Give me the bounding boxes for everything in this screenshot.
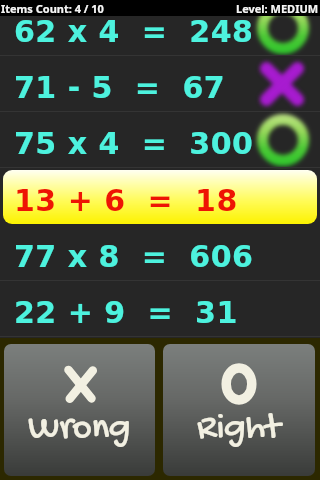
button[interactable]: Right [163,344,315,476]
staticText: 75 x 4 = 300 [14,126,254,161]
staticText: 22 + 9 = 31 [14,295,238,330]
staticText: Wrong [28,407,131,451]
button[interactable]: Wrong [4,344,155,476]
button[interactable]: 75 x 4 = 300 [0,112,320,168]
button[interactable]: 22 + 9 = 31 [0,281,320,337]
staticText: Level: MEDIUM [236,1,319,16]
button[interactable]: 77 x 8 = 606 [0,225,320,281]
staticText: 62 x 4 = 248 [14,16,254,49]
button[interactable]: 13 + 6 = 18 [3,170,317,224]
button[interactable]: 62 x 4 = 248 [0,16,320,56]
staticText: 77 x 8 = 606 [14,239,254,274]
staticText: 71 - 5 = 67 [14,70,226,105]
staticText: 13 + 6 = 18 [14,183,238,218]
staticText: Right [197,407,281,451]
button[interactable]: 71 - 5 = 67 [0,56,320,112]
staticText: Items Count: 4 / 10 [1,1,104,16]
